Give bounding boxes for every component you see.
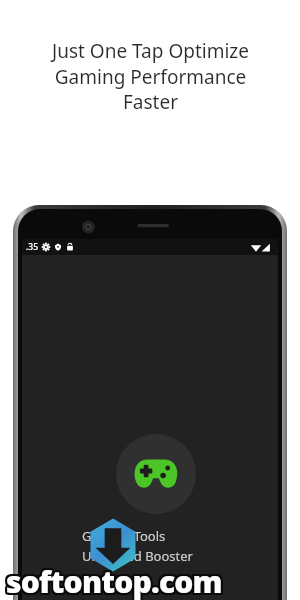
staticText: softontop.com bbox=[8, 560, 224, 600]
staticText: .35 bbox=[26, 241, 39, 253]
staticText: softontop.com bbox=[4, 560, 220, 600]
staticText: Just One Tap Optimize Gaming Performance… bbox=[52, 38, 249, 114]
staticText: softontop.com bbox=[6, 560, 222, 600]
staticText: softontop.com bbox=[8, 559, 224, 600]
staticText: softontop.com bbox=[6, 559, 222, 600]
staticText: softontop.com bbox=[6, 563, 222, 600]
staticText: softontop.com bbox=[6, 562, 222, 600]
staticText: softontop.com bbox=[7, 560, 223, 600]
staticText: softontop.com bbox=[7, 563, 223, 600]
staticText: softontop.com bbox=[4, 559, 220, 600]
staticText: softontop.com bbox=[8, 563, 224, 600]
staticText: softontop.com bbox=[5, 559, 221, 600]
staticText: softontop.com bbox=[7, 562, 223, 600]
staticText: softontop.com bbox=[5, 562, 221, 600]
staticText: softontop.com bbox=[8, 562, 224, 600]
staticText: Unlimited Booster bbox=[82, 547, 193, 565]
staticText: softontop.com bbox=[4, 562, 220, 600]
button[interactable]: Boost game performance bbox=[116, 434, 196, 514]
staticText: softontop.com bbox=[7, 561, 223, 600]
staticText: softontop.com bbox=[7, 559, 223, 600]
staticText: softontop.com bbox=[5, 560, 221, 600]
staticText: softontop.com bbox=[5, 563, 221, 600]
staticText: softontop.com bbox=[4, 563, 220, 600]
staticText: softontop.com bbox=[4, 561, 220, 600]
staticText: Gaming Tools bbox=[82, 527, 166, 545]
staticText: softontop.com bbox=[8, 561, 224, 600]
staticText: softontop.com bbox=[6, 561, 222, 600]
staticText: softontop.com bbox=[5, 561, 221, 600]
